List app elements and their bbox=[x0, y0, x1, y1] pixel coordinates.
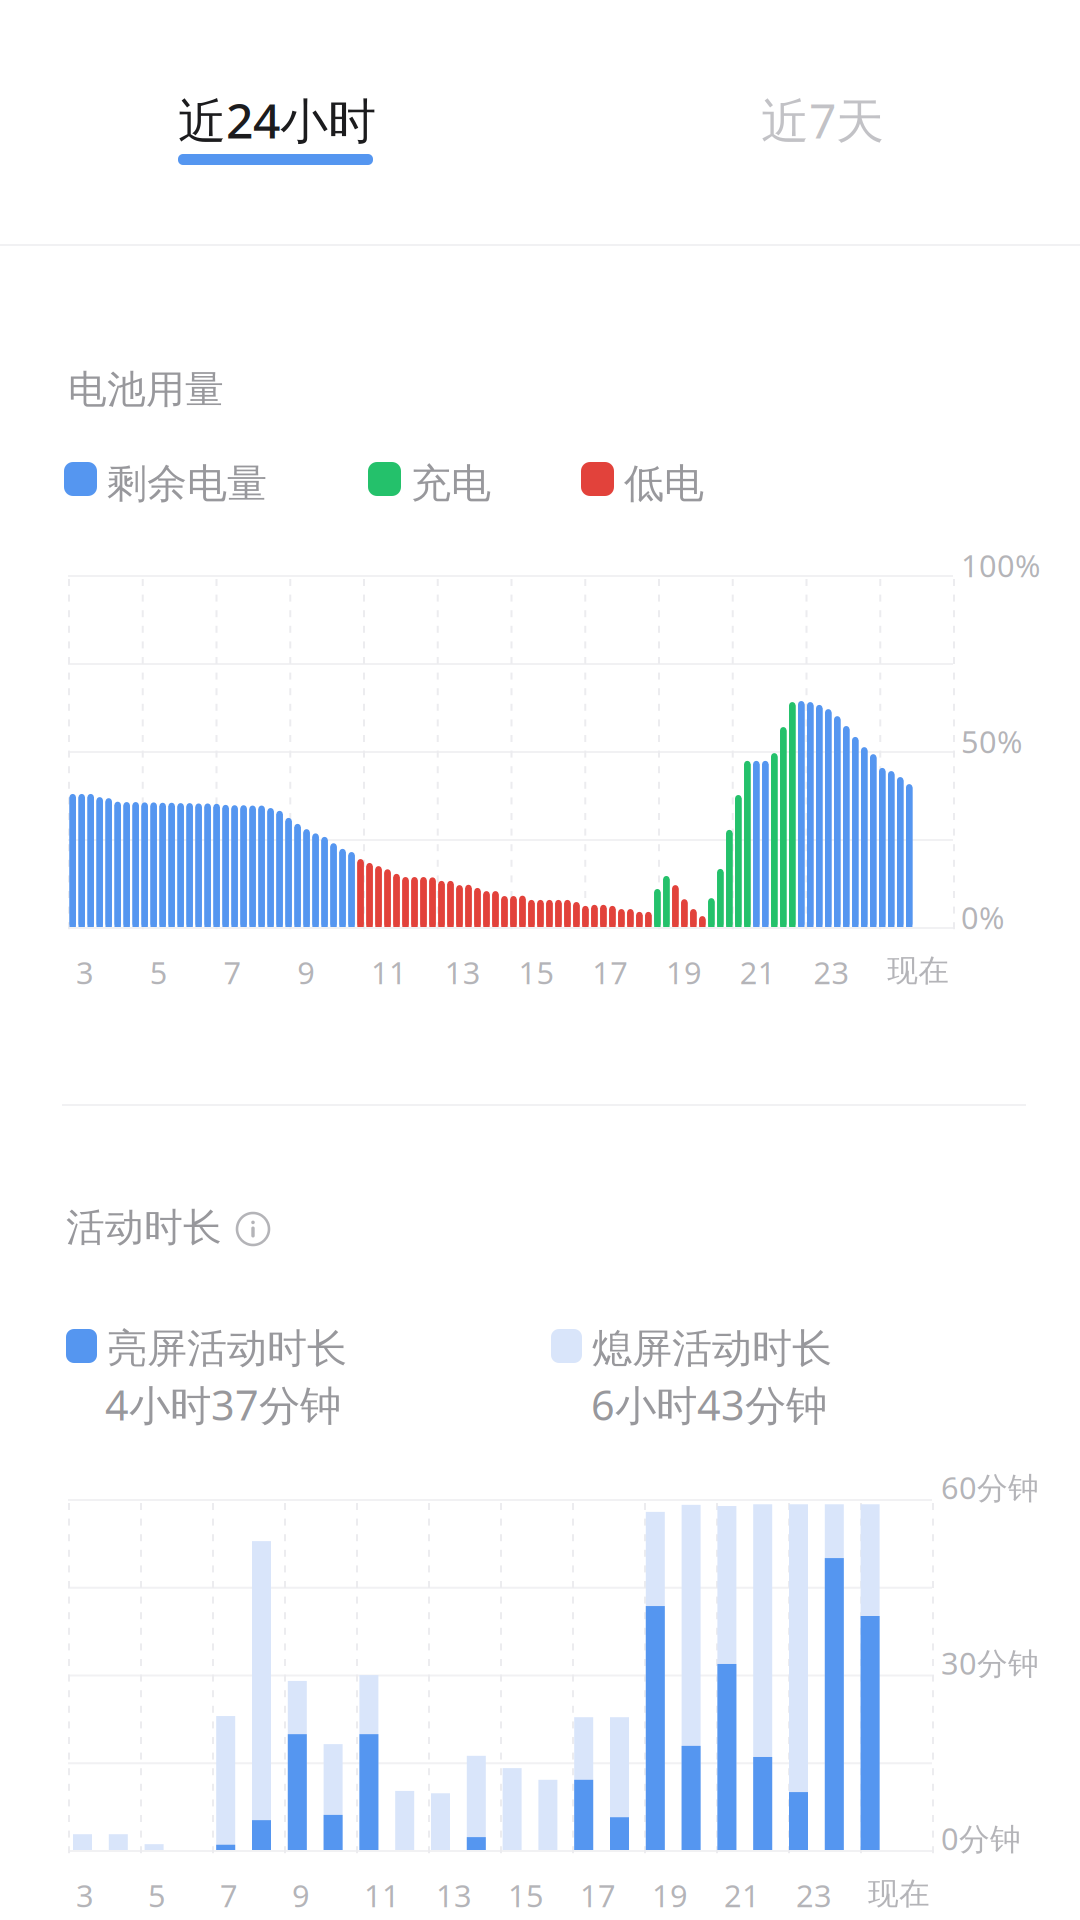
staticText: 21 bbox=[740, 952, 776, 993]
staticText: 电池用量 bbox=[68, 366, 224, 413]
staticText: 6小时43分钟 bbox=[591, 1377, 827, 1432]
staticText: 30分钟 bbox=[941, 1642, 1039, 1683]
button[interactable]: 近7天 bbox=[0, 0, 260, 200]
staticText: 13 bbox=[445, 952, 481, 993]
staticText: 9 bbox=[297, 952, 315, 993]
staticText: 17 bbox=[580, 1875, 616, 1916]
staticText: 3 bbox=[76, 952, 94, 993]
staticText: 0分钟 bbox=[941, 1818, 1021, 1859]
staticText: 60分钟 bbox=[941, 1467, 1039, 1508]
staticText: 熄屏活动时长 bbox=[592, 1324, 832, 1373]
staticText: 4小时37分钟 bbox=[105, 1377, 341, 1432]
button[interactable]: 近24小时 bbox=[0, 0, 440, 200]
staticText: 低电 bbox=[624, 459, 704, 508]
staticText: 19 bbox=[666, 952, 702, 993]
staticText: 5 bbox=[148, 1875, 166, 1916]
staticText: 15 bbox=[518, 952, 554, 993]
staticText: 现在 bbox=[868, 1875, 930, 1913]
staticText: 9 bbox=[292, 1875, 310, 1916]
staticText: 充电 bbox=[411, 459, 491, 508]
staticText: 23 bbox=[796, 1875, 832, 1916]
staticText: 15 bbox=[508, 1875, 544, 1916]
staticText: 5 bbox=[150, 952, 168, 993]
staticText: 0% bbox=[961, 897, 1004, 938]
staticText: 7 bbox=[223, 952, 241, 993]
staticText: 50% bbox=[961, 721, 1022, 762]
staticText: 13 bbox=[436, 1875, 472, 1916]
staticText: 23 bbox=[813, 952, 849, 993]
staticText: 3 bbox=[76, 1875, 94, 1916]
staticText: 19 bbox=[652, 1875, 688, 1916]
staticText: 亮屏活动时长 bbox=[107, 1324, 347, 1373]
staticText: 现在 bbox=[887, 952, 949, 990]
staticText: 11 bbox=[371, 952, 407, 993]
staticText: 21 bbox=[724, 1875, 760, 1916]
staticText: 11 bbox=[364, 1875, 400, 1916]
staticText: 7 bbox=[220, 1875, 238, 1916]
staticText: 剩余电量 bbox=[107, 459, 267, 508]
staticText: 近7天 bbox=[761, 88, 884, 152]
staticText: 17 bbox=[592, 952, 628, 993]
staticText: 100% bbox=[961, 545, 1040, 586]
staticText: 近24小时 bbox=[178, 88, 376, 152]
staticText: 活动时长 bbox=[66, 1204, 222, 1251]
